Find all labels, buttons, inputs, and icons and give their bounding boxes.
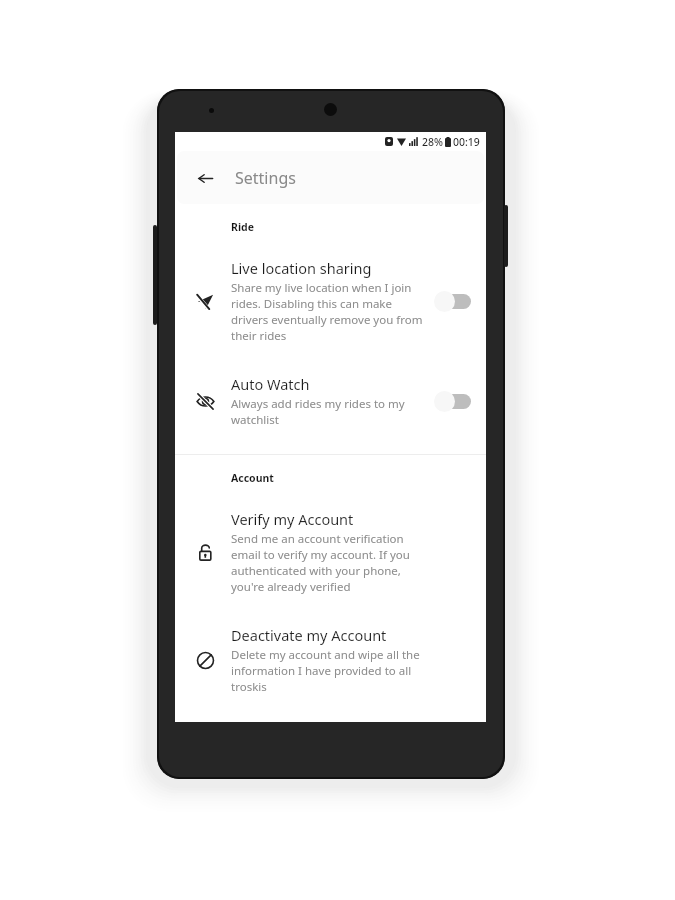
button[interactable]: Toggle live location sharing bbox=[432, 288, 476, 314]
staticText: Deactivate my Account bbox=[231, 625, 387, 645]
button[interactable]: Toggle auto watch bbox=[432, 388, 476, 414]
button[interactable]: Back bbox=[191, 164, 219, 192]
staticText: Settings bbox=[235, 167, 296, 189]
staticText: Account bbox=[231, 471, 274, 485]
staticText: Live location sharing bbox=[231, 258, 372, 278]
other: Verify my account bbox=[185, 532, 225, 572]
button[interactable]: Live location sharing bbox=[175, 248, 486, 354]
staticText: Auto Watch bbox=[231, 374, 310, 394]
other: Deactivate my account bbox=[185, 640, 225, 680]
staticText: Ride bbox=[231, 220, 254, 234]
staticText: 28% bbox=[422, 135, 443, 149]
button[interactable]: Deactivate my account bbox=[175, 615, 486, 705]
staticText: 00:19 bbox=[453, 135, 480, 149]
staticText: Share my live location when I join rides… bbox=[231, 280, 426, 344]
staticText: Delete my account and wipe all the infor… bbox=[231, 647, 432, 695]
other: Live location sharing bbox=[185, 281, 225, 321]
other: Auto Watch bbox=[185, 381, 225, 421]
staticText: Always add rides my rides to my watchlis… bbox=[231, 396, 426, 428]
button[interactable]: Auto Watch bbox=[175, 364, 486, 438]
button[interactable]: Verify my account bbox=[175, 499, 486, 605]
staticText: Verify my Account bbox=[231, 509, 354, 529]
button[interactable]: Back bbox=[177, 151, 484, 204]
staticText: Send me an account verification email to… bbox=[231, 531, 432, 595]
